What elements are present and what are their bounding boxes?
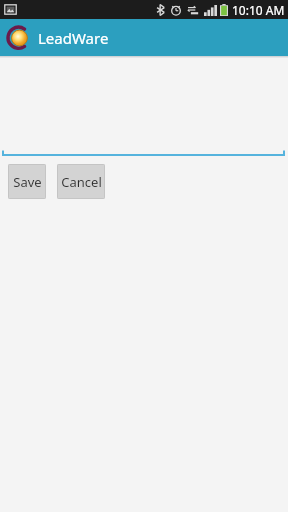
button[interactable] bbox=[0, 151, 288, 157]
staticText: 10:10 AM bbox=[232, 2, 285, 18]
button[interactable]: Cancel bbox=[57, 164, 105, 199]
staticText: LeadWare bbox=[38, 28, 109, 48]
staticText: Cancel bbox=[61, 173, 102, 191]
button[interactable]: Save bbox=[8, 164, 46, 199]
staticText: Save bbox=[13, 173, 42, 191]
